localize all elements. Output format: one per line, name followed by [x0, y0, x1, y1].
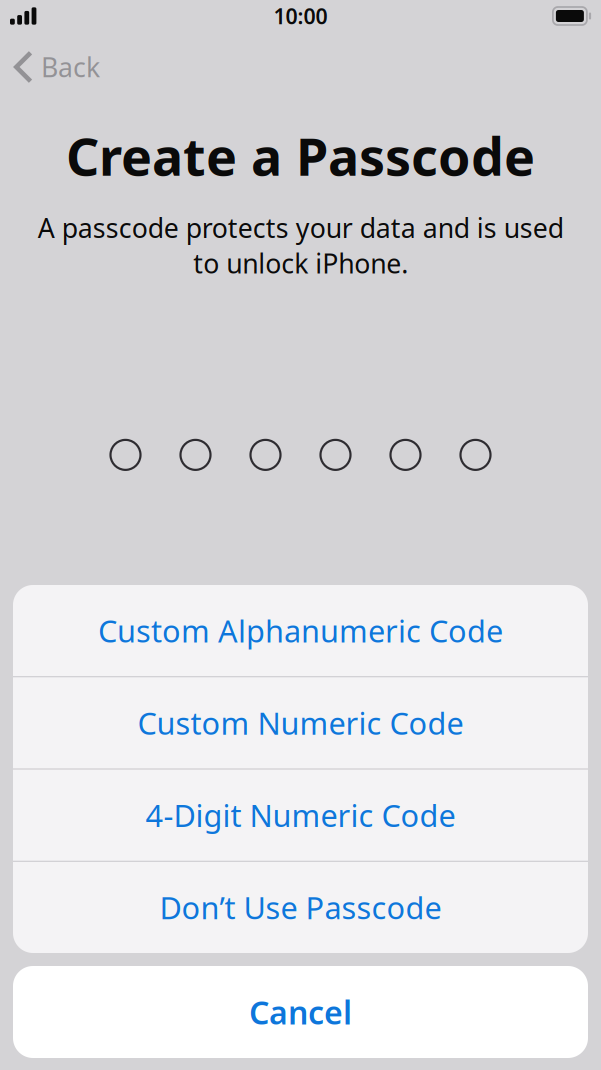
button[interactable]: Back	[0, 32, 114, 102]
button[interactable]: Custom Numeric Code	[13, 677, 588, 768]
staticText: Cancel	[249, 991, 352, 1033]
staticText: Create a Passcode	[66, 121, 535, 190]
staticText: 4-Digit Numeric Code	[145, 795, 455, 835]
staticText: Don’t Use Passcode	[159, 887, 441, 928]
staticText: Back	[41, 49, 100, 85]
button[interactable]: 4-Digit Numeric Code	[13, 769, 588, 861]
button[interactable]: Cancel	[13, 966, 588, 1058]
button[interactable]: Custom Alphanumeric Code	[13, 585, 588, 676]
staticText: 10:00	[273, 2, 327, 30]
staticText: Custom Alphanumeric Code	[98, 610, 503, 651]
button[interactable]: Don’t Use Passcode	[13, 862, 588, 953]
staticText: A passcode protects your data and is use…	[37, 210, 563, 281]
staticText: Custom Numeric Code	[137, 702, 463, 743]
